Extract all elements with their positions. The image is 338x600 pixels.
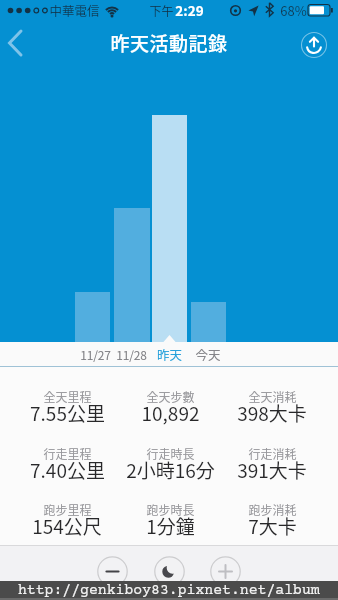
staticText: 68% (280, 1, 307, 20)
button[interactable] (154, 556, 185, 588)
staticText: 2:29 (175, 0, 204, 20)
staticText: 7.40公里 (30, 456, 105, 484)
staticText: 全天消耗 (248, 388, 297, 405)
button[interactable] (294, 25, 334, 65)
staticText: 154公尺 (32, 512, 102, 540)
staticText: 398大卡 (237, 399, 307, 427)
staticText: 下午 (149, 2, 174, 19)
staticText: 391大卡 (237, 456, 307, 484)
staticText: 7大卡 (248, 512, 297, 540)
button[interactable] (0, 24, 40, 64)
staticText: http://genkiboy83.pixnet.net/album (18, 582, 320, 599)
button[interactable] (152, 115, 187, 342)
staticText: 2小時16分 (126, 456, 215, 484)
staticText: 11/28 (116, 346, 147, 363)
staticText: 跑步消耗 (248, 501, 297, 518)
staticText: 跑步里程 (43, 501, 92, 518)
button[interactable] (210, 556, 241, 588)
staticText: 今天 (195, 345, 221, 363)
staticText: 行走消耗 (248, 445, 297, 462)
staticText: 行走時長 (146, 445, 195, 462)
button[interactable] (97, 556, 128, 588)
staticText: 昨天活動記錄 (110, 29, 228, 57)
button[interactable]: 昨天 (80, 340, 260, 368)
staticText: 昨天 (157, 345, 183, 363)
staticText: 11/27 (80, 346, 111, 363)
staticText: 1分鐘 (146, 512, 195, 540)
staticText: 7.55公里 (30, 399, 105, 427)
staticText: 全天里程 (43, 388, 92, 405)
staticText: 跑步時長 (146, 501, 195, 518)
staticText: 全天步數 (146, 388, 195, 405)
staticText: 行走里程 (43, 445, 92, 462)
staticText: 10,892 (141, 399, 200, 427)
staticText: 中華電信 (49, 1, 100, 19)
